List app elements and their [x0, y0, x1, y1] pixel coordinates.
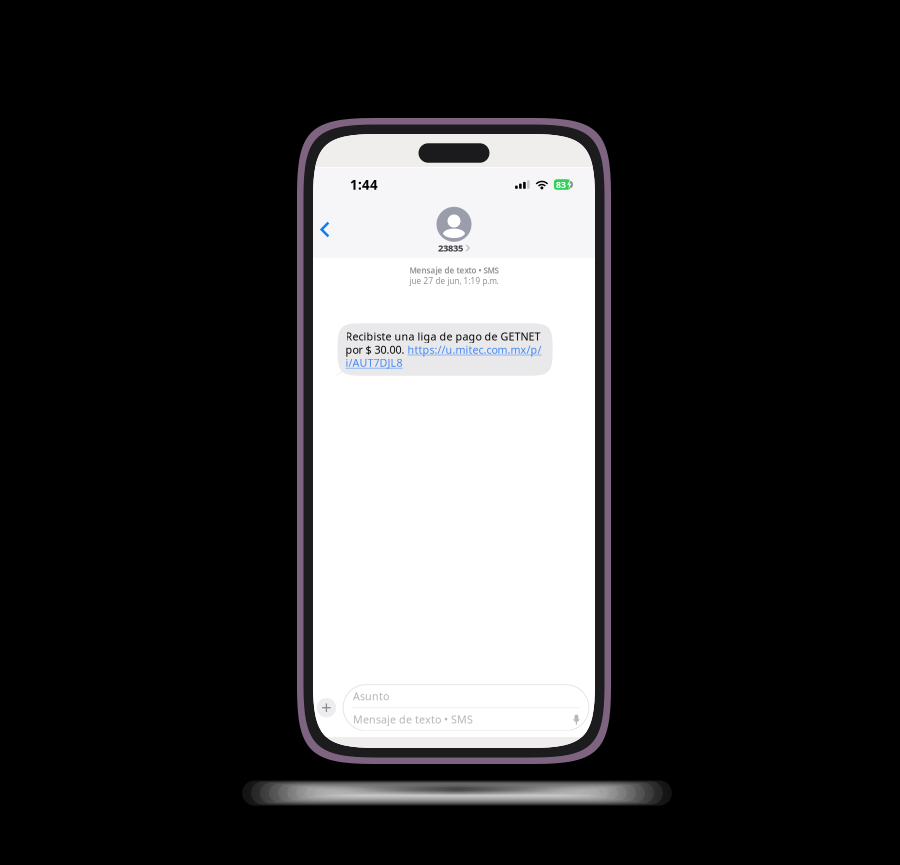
staticText: Asunto — [353, 689, 389, 703]
button[interactable]: Back — [313, 207, 344, 252]
staticText: Mensaje de texto • SMS — [409, 265, 498, 276]
staticText: 23835 — [438, 242, 463, 254]
staticText: 83 — [556, 178, 566, 191]
staticText: 1:44 — [350, 176, 378, 193]
button[interactable]: 23835 — [313, 205, 595, 254]
button[interactable]: Add attachment — [313, 694, 336, 721]
staticText: Recibiste una liga de pago de GETNET por… — [346, 329, 542, 370]
staticText: Mensaje de texto • SMS — [353, 712, 473, 726]
staticText: jue 27 de jun, 1:19 p.m. — [409, 276, 498, 286]
